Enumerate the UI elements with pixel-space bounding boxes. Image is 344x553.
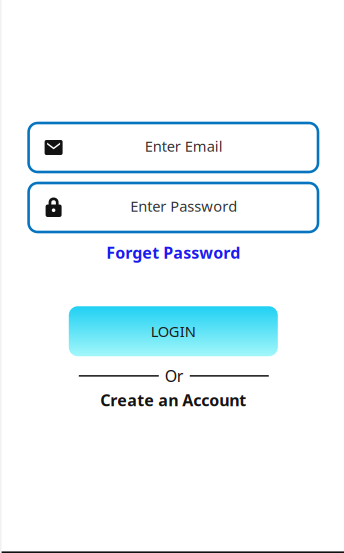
staticText: LOGIN	[151, 321, 196, 341]
button[interactable]: Forget Password	[106, 242, 240, 263]
button[interactable]: Create an Account	[100, 389, 246, 411]
button[interactable]: Enter Password	[29, 183, 318, 232]
staticText: Create an Account	[100, 389, 246, 411]
staticText: Forget Password	[106, 242, 240, 263]
button[interactable]: LOGIN	[69, 306, 278, 356]
staticText: Enter Email	[145, 136, 223, 156]
button[interactable]: Enter Email	[29, 123, 318, 172]
staticText: Or	[165, 365, 184, 386]
staticText: Enter Password	[130, 196, 237, 216]
